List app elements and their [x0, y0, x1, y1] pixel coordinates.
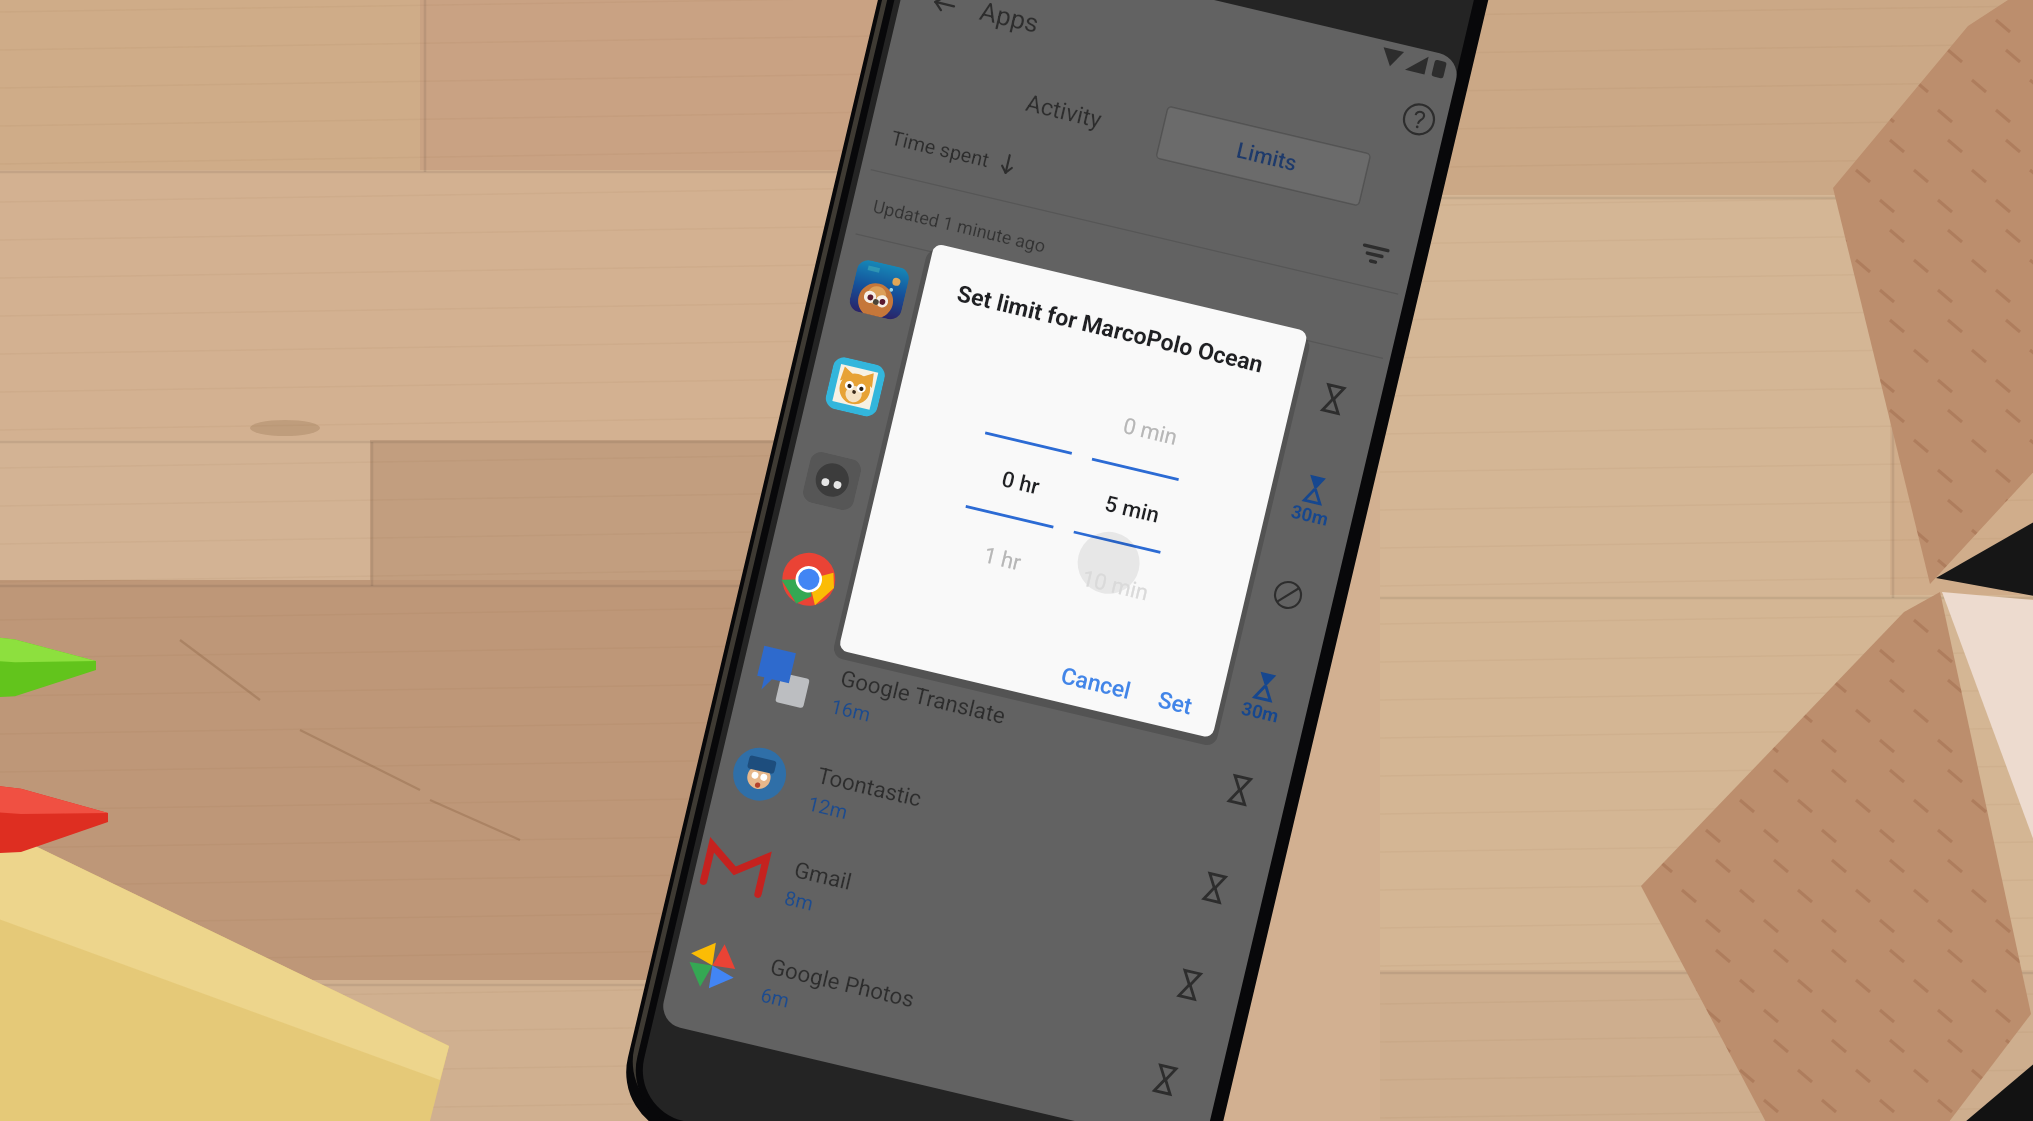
- staticText: Toontastic: [815, 762, 924, 812]
- staticText: 0 min: [1121, 413, 1180, 451]
- staticText: 10 min: [1079, 566, 1151, 606]
- staticText: Google Translate: [838, 665, 1008, 729]
- staticText: Apps: [977, 0, 1042, 39]
- staticText: 6m: [758, 983, 792, 1012]
- staticText: 8m: [782, 886, 816, 915]
- staticText: 1 hr: [981, 542, 1024, 576]
- staticText: Updated 1 minute ago: [871, 195, 1048, 257]
- staticText: Limits: [1234, 138, 1299, 177]
- staticText: Set: [1155, 686, 1195, 720]
- staticText: 0 hr: [999, 466, 1042, 500]
- staticText: Activity: [1023, 89, 1104, 134]
- staticText: 12m: [806, 791, 851, 823]
- staticText: 30m: [1289, 501, 1331, 531]
- staticText: Set limit for MarcoPolo Ocean: [955, 279, 1266, 378]
- staticText: 5 min: [1102, 491, 1162, 529]
- staticText: Time spent: [889, 126, 992, 171]
- staticText: Gmail: [792, 856, 854, 895]
- staticText: 16m: [829, 694, 874, 726]
- staticText: Cancel: [1058, 662, 1134, 705]
- staticText: Google Photos: [768, 953, 917, 1012]
- staticText: 30m: [1239, 698, 1281, 728]
